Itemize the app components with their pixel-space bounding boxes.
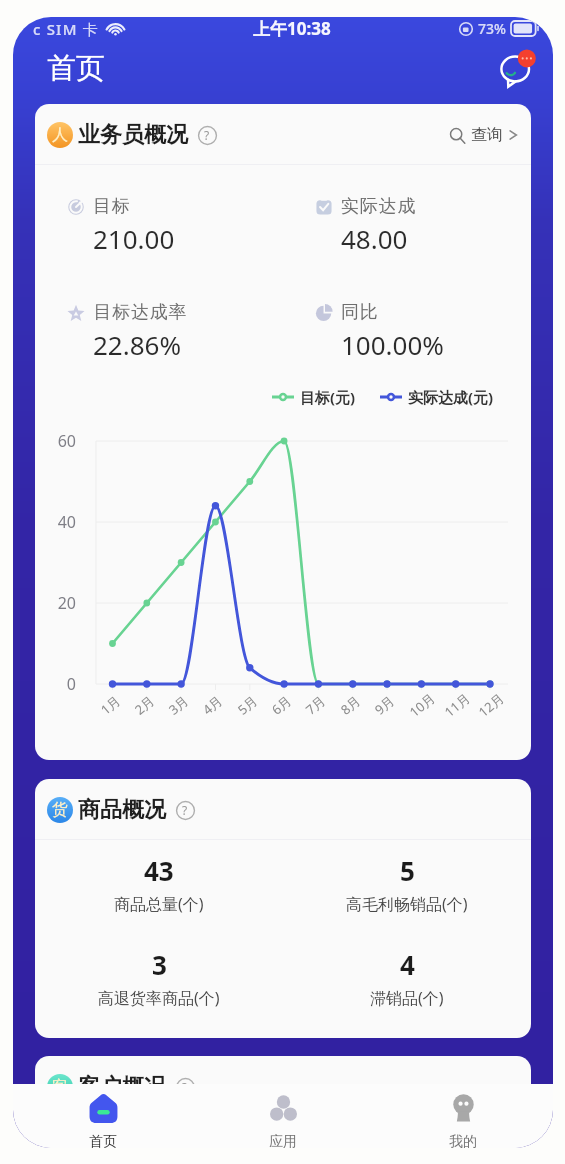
button[interactable]: 目标(元) (272, 387, 356, 407)
staticText: c SIM 卡 (33, 19, 99, 39)
staticText: ? (204, 127, 210, 143)
staticText: 目标(元) (300, 387, 356, 407)
staticText: 滞销品(个) (370, 987, 444, 1009)
staticText: 商品总量(个) (114, 893, 204, 915)
staticText: 商品概况 (78, 796, 166, 824)
button[interactable]: 我的 (373, 1084, 553, 1148)
button[interactable]: 首页 (13, 1084, 193, 1148)
staticText: 10月 (405, 689, 438, 721)
button[interactable]: 货 (47, 796, 195, 824)
button[interactable]: 客 (47, 1073, 195, 1101)
staticText: 48.00 (341, 221, 408, 256)
staticText: 查询 (471, 125, 503, 145)
button[interactable]: 人 (47, 121, 217, 149)
button[interactable]: 目标达成率 (67, 301, 283, 362)
staticText: 12月 (474, 689, 507, 721)
staticText: 我的 (449, 1133, 477, 1148)
staticText: 首页 (89, 1133, 117, 1148)
button[interactable]: Help (175, 800, 195, 820)
staticText: 实际达成 (341, 195, 417, 218)
button[interactable]: Messages (496, 47, 540, 91)
button[interactable]: 4 (283, 947, 531, 1009)
staticText: 应用 (269, 1133, 297, 1148)
staticText: 2月 (131, 691, 158, 719)
staticText: 11月 (440, 689, 473, 721)
staticText: 高毛利畅销品(个) (346, 893, 468, 915)
button[interactable]: 5 (283, 853, 531, 915)
button[interactable]: Help (197, 125, 217, 145)
staticText: 43 (144, 853, 174, 888)
staticText: 货 (52, 800, 68, 820)
staticText: 3月 (165, 691, 192, 719)
staticText: 4月 (199, 691, 226, 719)
staticText: ? (182, 1079, 188, 1095)
staticText: 40 (57, 511, 76, 533)
button[interactable]: 查询 (449, 125, 518, 145)
staticText: 0 (66, 673, 76, 695)
staticText: ? (182, 802, 188, 818)
staticText: 5月 (234, 691, 261, 719)
staticText: 客户概况 (78, 1073, 166, 1101)
staticText: 首页 (47, 50, 105, 87)
staticText: 20 (57, 592, 76, 614)
staticText: 客 (52, 1077, 68, 1097)
staticText: 3 (152, 947, 167, 982)
staticText: 高退货率商品(个) (98, 987, 220, 1009)
staticText: 5 (400, 853, 415, 888)
button[interactable]: 43 (35, 853, 283, 915)
staticText: 4 (400, 947, 415, 982)
staticText: 实际达成(元) (408, 387, 494, 407)
staticText: 7月 (302, 691, 329, 719)
button[interactable]: 实际达成(元) (380, 387, 494, 407)
staticText: 8月 (337, 691, 364, 719)
button[interactable]: Help (175, 1077, 195, 1097)
staticText: 9月 (371, 691, 398, 719)
staticText: 73% (478, 19, 506, 38)
staticText: 22.86% (93, 327, 182, 362)
staticText: 人 (52, 125, 68, 145)
staticText: 目标达成率 (93, 301, 187, 324)
staticText: 6月 (268, 691, 295, 719)
staticText: 210.00 (93, 221, 175, 256)
button[interactable]: 目标 (67, 195, 283, 256)
button[interactable]: 应用 (193, 1084, 373, 1148)
staticText: 目标 (93, 195, 131, 218)
button[interactable]: 3 (35, 947, 283, 1009)
staticText: 60 (57, 430, 76, 452)
button[interactable]: 同比 (315, 301, 531, 362)
staticText: 100.00% (341, 327, 444, 362)
staticText: 同比 (341, 301, 379, 324)
button[interactable]: 实际达成 (315, 195, 531, 256)
staticText: 业务员概况 (78, 121, 188, 149)
staticText: 上午10:38 (253, 17, 331, 40)
staticText: 1月 (97, 691, 124, 719)
